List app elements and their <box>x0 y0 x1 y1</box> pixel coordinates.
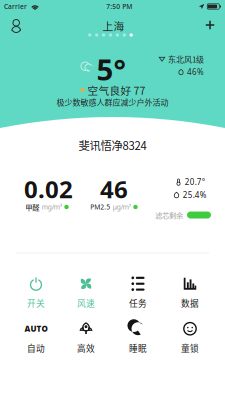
staticText: 睡眠 <box>129 342 147 354</box>
staticText: 童锁 <box>181 342 199 354</box>
staticText: mg/m³ <box>42 203 62 211</box>
button[interactable]: AUTO <box>11 322 61 354</box>
button[interactable]: 开关 <box>11 277 61 309</box>
staticText: 空气良好 77 <box>87 82 145 98</box>
button[interactable]: Account <box>1 13 31 39</box>
button[interactable]: Add device <box>195 12 225 38</box>
staticText: 甲醛 <box>25 202 39 212</box>
staticText: 20.7° <box>185 177 205 187</box>
staticText: μg/m³ <box>113 203 131 211</box>
button[interactable]: 睡眠 <box>113 322 163 354</box>
staticText: 东北风1级 <box>168 53 204 65</box>
staticText: 自动 <box>27 342 45 354</box>
staticText: 数据 <box>181 297 199 309</box>
staticText: 斐讯悟净8324 <box>78 137 146 153</box>
staticText: 高效 <box>77 342 95 354</box>
staticText: 46 <box>100 173 128 205</box>
staticText: PM2.5 <box>90 203 110 211</box>
staticText: 极少数敏感人群应减少户外活动 <box>56 96 168 108</box>
button[interactable]: 高效 <box>61 322 111 354</box>
button[interactable]: 数据 <box>165 277 215 309</box>
staticText: 7:50 PM <box>106 2 132 11</box>
staticText: 0.02 <box>24 173 73 205</box>
staticText: 风速 <box>77 297 95 309</box>
staticText: Carrier <box>4 2 27 11</box>
staticText: 任务 <box>129 297 147 309</box>
button[interactable]: 童锁 <box>165 322 215 354</box>
staticText: 25.4% <box>183 190 207 200</box>
staticText: 开关 <box>27 297 45 309</box>
staticText: AUTO <box>24 323 47 334</box>
staticText: 滤芯剩余 <box>155 210 183 220</box>
staticText: 46% <box>187 67 204 77</box>
staticText: 上海 <box>102 18 124 33</box>
button[interactable]: 风速 <box>61 277 111 309</box>
staticText: 5° <box>96 49 125 88</box>
button[interactable]: 任务 <box>113 277 163 309</box>
